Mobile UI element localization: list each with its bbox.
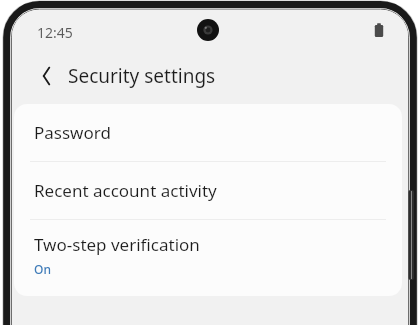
button[interactable]: Navigate up <box>30 61 60 91</box>
staticText: Password <box>34 121 111 144</box>
button[interactable]: Password <box>14 104 402 161</box>
staticText: On <box>34 261 51 277</box>
button[interactable]: Two-step verification <box>14 220 402 296</box>
staticText: Two-step verification <box>34 233 200 256</box>
staticText: Security settings <box>68 63 216 89</box>
button[interactable]: Recent account activity <box>14 162 402 219</box>
staticText: 12:45 <box>37 23 73 42</box>
staticText: Recent account activity <box>34 179 217 202</box>
